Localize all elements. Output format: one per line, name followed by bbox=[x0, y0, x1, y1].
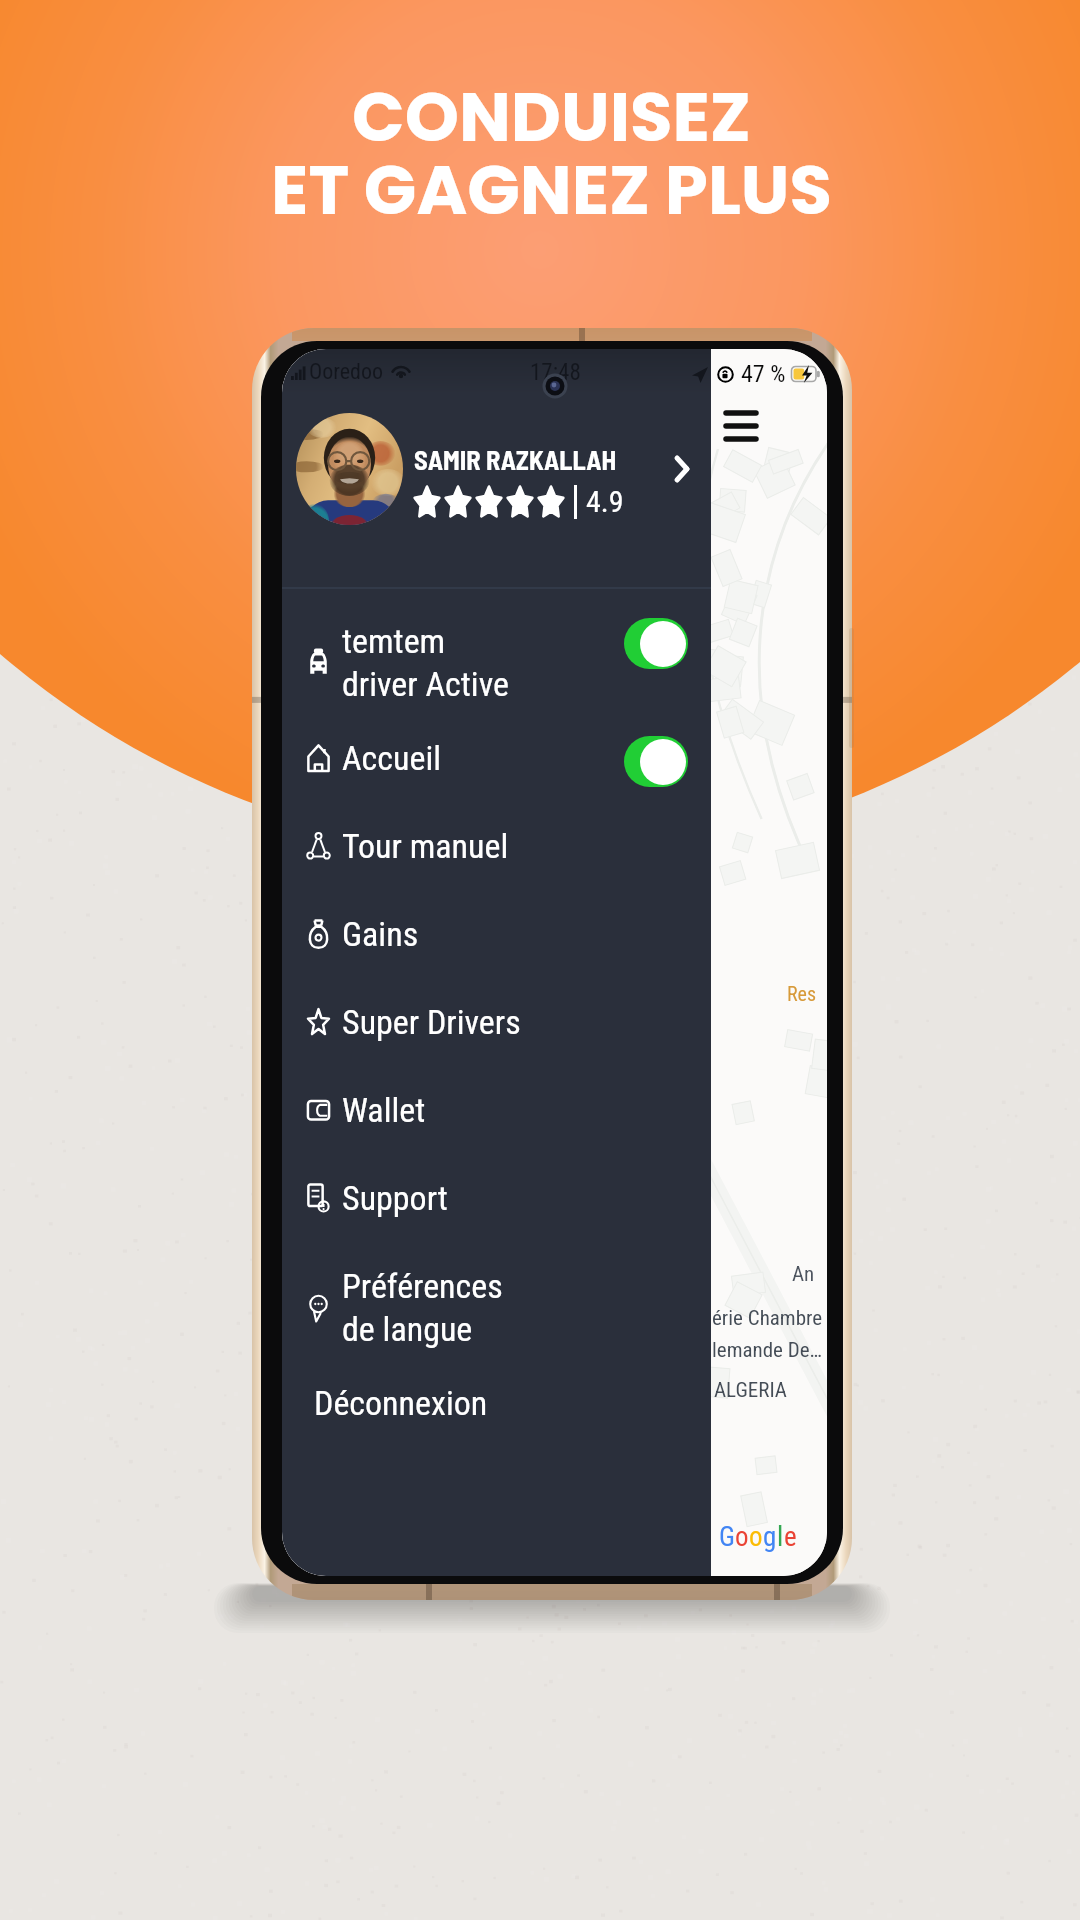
button[interactable]: Super Drivers bbox=[282, 978, 711, 1066]
staticText: Res bbox=[787, 982, 817, 1005]
staticText: G bbox=[719, 1521, 735, 1553]
staticText: 17:48 bbox=[530, 359, 581, 386]
staticText: SAMIR RAZKALLAH bbox=[414, 443, 617, 475]
staticText: Super Drivers bbox=[342, 1002, 521, 1042]
button[interactable]: Support bbox=[282, 1154, 711, 1242]
staticText: 47 % bbox=[741, 360, 786, 388]
button[interactable]: Open navigation menu bbox=[719, 404, 763, 448]
button[interactable]: SAMIR RAZKALLAH bbox=[282, 413, 711, 525]
button[interactable]: Déconnexion bbox=[282, 1372, 711, 1434]
staticText: e bbox=[784, 1521, 797, 1553]
button[interactable]: temtem driver Active bbox=[282, 611, 711, 714]
button[interactable]: Wallet bbox=[282, 1066, 711, 1154]
staticText: Accueil bbox=[342, 738, 441, 778]
staticText: Ooredoo bbox=[309, 359, 384, 385]
staticText: Wallet bbox=[342, 1090, 426, 1130]
staticText: Gains bbox=[342, 914, 419, 954]
staticText: CONDUISEZ ET GAGNEZ PLUS bbox=[271, 69, 832, 238]
staticText: An bbox=[792, 1262, 815, 1287]
staticText: érie Chambre lemande De… bbox=[712, 1306, 823, 1362]
staticText: o bbox=[735, 1521, 749, 1553]
staticText: 4.9 bbox=[586, 484, 624, 519]
staticText: g bbox=[763, 1521, 777, 1553]
staticText: l bbox=[777, 1521, 784, 1553]
button[interactable]: Gains bbox=[282, 890, 711, 978]
staticText: temtem driver Active bbox=[342, 621, 509, 704]
button[interactable]: Accueil bbox=[282, 714, 711, 802]
staticText: ALGERIA bbox=[714, 1378, 787, 1403]
staticText: Préférences de langue bbox=[342, 1266, 503, 1349]
staticText: Déconnexion bbox=[314, 1383, 488, 1423]
button[interactable]: Préférences de langue bbox=[282, 1242, 711, 1372]
staticText: Tour manuel bbox=[342, 826, 509, 866]
staticText: o bbox=[749, 1521, 763, 1553]
staticText: Support bbox=[342, 1178, 448, 1218]
button[interactable]: Tour manuel bbox=[282, 802, 711, 890]
